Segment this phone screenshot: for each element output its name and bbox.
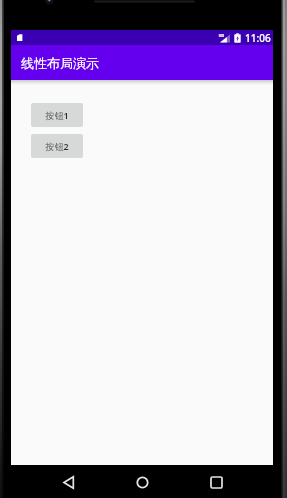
button[interactable]: 按钮1 bbox=[31, 103, 83, 127]
button[interactable]: 按钮2 bbox=[31, 134, 83, 158]
button[interactable]: Back bbox=[56, 469, 82, 495]
staticText: 11:06 bbox=[245, 31, 271, 45]
button[interactable]: Recent apps bbox=[203, 469, 229, 495]
button[interactable]: Home bbox=[129, 469, 155, 495]
staticText: 线性布局演示 bbox=[21, 55, 99, 71]
staticText: 按钮1 bbox=[45, 109, 69, 121]
staticText: 按钮2 bbox=[45, 140, 69, 152]
